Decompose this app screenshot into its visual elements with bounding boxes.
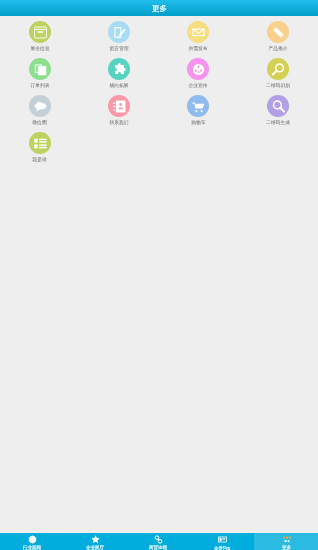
staticText: 订单列表 <box>30 82 50 88</box>
staticText: 微信圈 <box>32 119 47 125</box>
staticText: 留言管理 <box>109 45 129 51</box>
staticText: 供需发布 <box>188 45 208 51</box>
staticText: 横向拓展 <box>109 82 129 88</box>
staticText: 联系我们 <box>109 119 129 125</box>
staticText: 全景Pro <box>214 545 231 550</box>
staticText: 更多 <box>282 545 291 550</box>
staticText: 二维码识别 <box>266 82 290 88</box>
button[interactable]: 行业新闻 <box>0 533 63 550</box>
staticText: 展会信息 <box>30 45 50 51</box>
button[interactable]: 二维码生成 <box>238 94 318 131</box>
staticText: 二维码生成 <box>266 119 290 125</box>
button[interactable]: 留言管理 <box>79 20 158 57</box>
button[interactable]: 企业宣传 <box>158 57 238 94</box>
button[interactable]: 全景Pro <box>190 533 254 550</box>
staticText: 我是谁 <box>32 156 47 162</box>
staticText: 购物车 <box>191 119 206 125</box>
staticText: 行业新闻 <box>23 545 41 550</box>
staticText: 产品推介 <box>268 45 288 51</box>
staticText: 商贸连锁 <box>149 545 167 550</box>
button[interactable]: 购物车 <box>158 94 238 131</box>
button[interactable]: 我是谁 <box>0 131 79 168</box>
button[interactable]: 产品推介 <box>238 20 318 57</box>
staticText: 更多 <box>152 4 167 13</box>
staticText: 企业宣传 <box>188 82 208 88</box>
button[interactable]: 商贸连锁 <box>126 533 190 550</box>
button[interactable]: 联系我们 <box>79 94 158 131</box>
button[interactable]: 供需发布 <box>158 20 238 57</box>
button[interactable]: 展会信息 <box>0 20 79 57</box>
staticText: 企业展厅 <box>86 545 104 550</box>
button[interactable]: 二维码识别 <box>238 57 318 94</box>
button[interactable]: 企业展厅 <box>63 533 126 550</box>
button[interactable]: 横向拓展 <box>79 57 158 94</box>
button[interactable]: 更多 <box>254 533 318 550</box>
button[interactable]: 订单列表 <box>0 57 79 94</box>
button[interactable]: 微信圈 <box>0 94 79 131</box>
